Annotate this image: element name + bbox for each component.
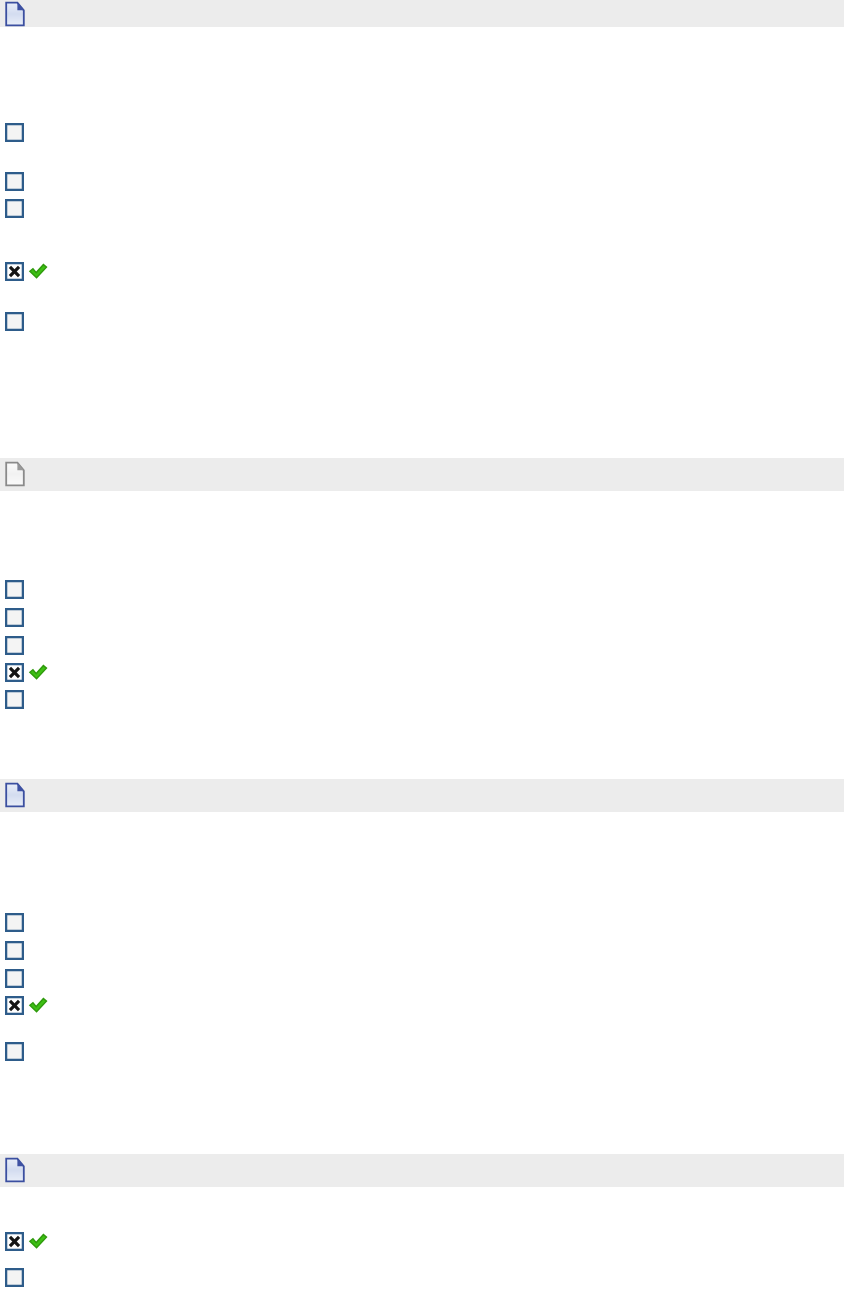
button[interactable]: Option 4 selected <box>0 262 844 281</box>
button[interactable]: Option 1 <box>0 123 844 142</box>
button[interactable]: Option 14 selected <box>0 996 844 1015</box>
button[interactable]: Option 12 <box>0 941 844 960</box>
button[interactable]: Option 15 <box>0 1042 844 1061</box>
button[interactable]: Document section header <box>0 1154 844 1187</box>
button[interactable]: Option 16 selected <box>0 1232 844 1251</box>
button[interactable]: Option 3 <box>0 199 844 218</box>
button[interactable]: Option 11 <box>0 913 844 932</box>
button[interactable]: Document section header <box>0 458 844 491</box>
button[interactable]: Option 17 <box>0 1268 844 1287</box>
button[interactable]: Document section header <box>0 779 844 812</box>
button[interactable]: Option 2 <box>0 172 844 191</box>
button[interactable]: Document section header <box>0 0 844 27</box>
button[interactable]: Option 10 <box>0 690 844 709</box>
button[interactable]: Option 9 selected <box>0 663 844 682</box>
button[interactable]: Option 5 <box>0 312 844 331</box>
button[interactable]: Option 13 <box>0 969 844 988</box>
button[interactable]: Option 7 <box>0 608 844 627</box>
button[interactable]: Option 6 <box>0 580 844 599</box>
button[interactable]: Option 8 <box>0 636 844 655</box>
